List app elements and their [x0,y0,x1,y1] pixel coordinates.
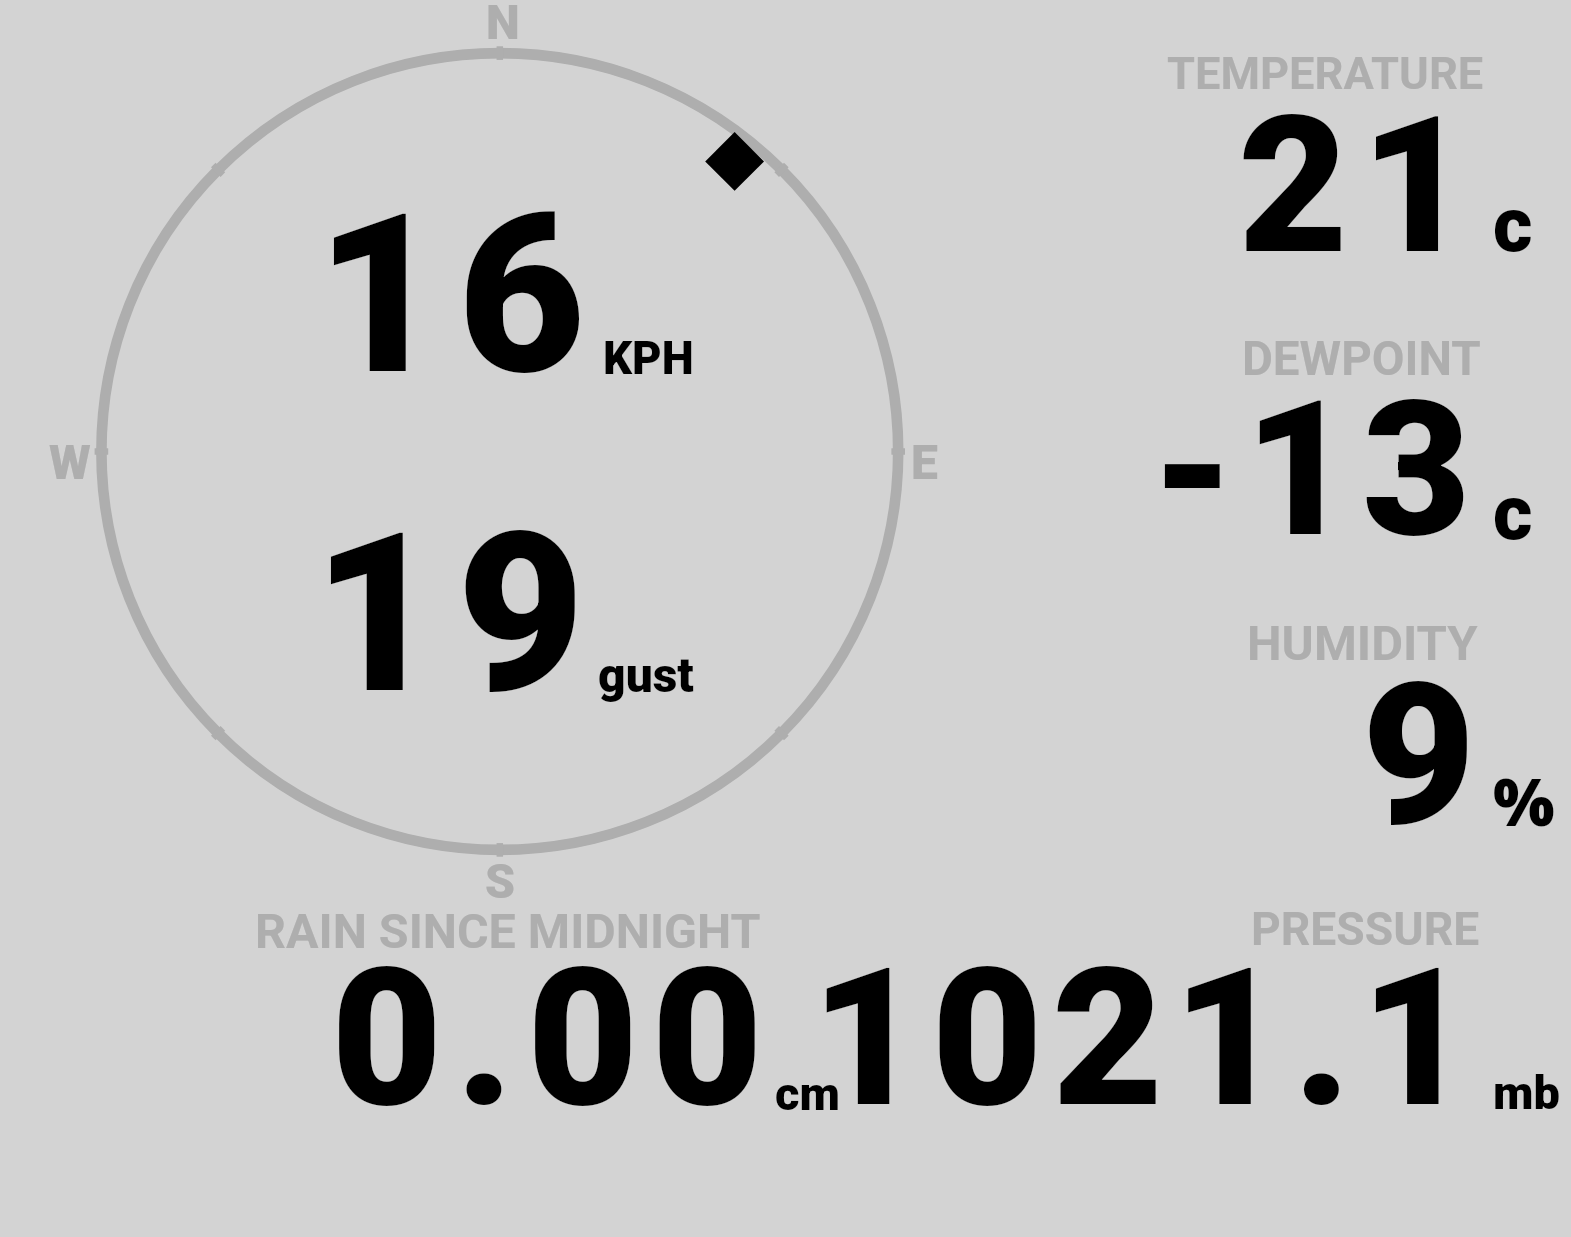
button[interactable]: Wind direction compass [100,52,899,851]
staticText: RAIN SINCE MIDNIGHT [255,903,761,960]
staticText: HUMIDITY [1247,615,1478,672]
staticText: W [49,434,91,490]
staticText: gust [598,647,694,703]
button[interactable]: Humidity 9 percent [1120,605,1570,875]
staticText: KPH [603,332,694,385]
staticText: % [1493,757,1555,846]
button[interactable]: Pressure 1021.1 millibars [870,895,1570,1125]
staticText: 16 [316,167,600,425]
button[interactable]: Rain since midnight 0.00 cm [240,895,860,1125]
staticText: 1021.1 [811,926,1481,1151]
staticText: 9 [1362,641,1476,871]
staticText: cm [775,1066,840,1121]
staticText: 19 [313,486,602,744]
staticText: c [1493,468,1533,557]
staticText: TEMPERATURE [1167,47,1484,100]
staticText: 21 [1238,75,1483,298]
staticText: c [1493,180,1533,269]
staticText: E [911,434,938,490]
staticText: S [485,853,516,909]
staticText: PRESSURE [1251,902,1480,956]
staticText: -13 [1151,361,1480,580]
button[interactable]: Dewpoint minus 13 degrees celsius [1120,320,1570,590]
staticText: 0.00 [331,926,776,1151]
staticText: mb [1493,1065,1560,1120]
staticText: DEWPOINT [1242,331,1481,387]
button[interactable]: Temperature 21 degrees celsius [1120,40,1570,310]
staticText: N [486,0,520,50]
